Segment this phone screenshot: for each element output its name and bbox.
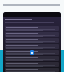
- button[interactable]: Compose: [30, 50, 34, 55]
- button[interactable]: [5, 38, 59, 43]
- button[interactable]: [5, 50, 59, 55]
- button[interactable]: [5, 44, 59, 49]
- button[interactable]: [5, 68, 59, 72]
- button[interactable]: [5, 32, 59, 37]
- button[interactable]: [5, 62, 59, 67]
- button[interactable]: [5, 56, 59, 61]
- button[interactable]: [5, 26, 59, 31]
